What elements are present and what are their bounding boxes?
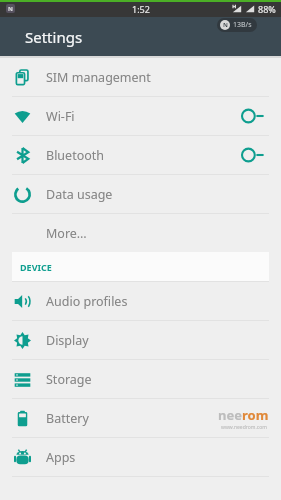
staticText: Display bbox=[46, 332, 89, 349]
staticText: Battery bbox=[46, 410, 89, 427]
staticText: SIM management bbox=[46, 69, 151, 86]
button[interactable]: Audio profiles bbox=[0, 282, 281, 320]
staticText: DEVICE bbox=[20, 261, 52, 273]
staticText: www.needrom.com bbox=[221, 424, 267, 431]
staticText: Bluetooth bbox=[46, 147, 105, 164]
button[interactable]: Battery bbox=[0, 399, 281, 437]
button[interactable]: Wi-Fi bbox=[0, 97, 281, 135]
staticText: 1:52 bbox=[132, 3, 150, 15]
button[interactable]: Storage bbox=[0, 360, 281, 398]
staticText: Wi-Fi bbox=[46, 108, 75, 125]
button[interactable]: Data usage bbox=[0, 175, 281, 213]
staticText: 88% bbox=[258, 3, 276, 15]
staticText: More… bbox=[46, 225, 87, 242]
staticText: Apps bbox=[46, 449, 76, 466]
staticText: Storage bbox=[46, 371, 92, 388]
staticText: N bbox=[223, 21, 228, 29]
button[interactable]: Apps bbox=[0, 438, 281, 476]
staticText: rom bbox=[242, 406, 269, 424]
staticText: 13B/s bbox=[233, 20, 252, 30]
button[interactable]: Bluetooth bbox=[0, 136, 281, 174]
button[interactable]: More… bbox=[0, 214, 281, 252]
staticText: N bbox=[8, 5, 13, 13]
staticText: Data usage bbox=[46, 186, 113, 203]
button[interactable]: SIM management bbox=[0, 58, 281, 96]
staticText: Audio profiles bbox=[46, 293, 128, 310]
staticText: Settings bbox=[25, 27, 83, 47]
staticText: nee bbox=[218, 406, 242, 424]
button[interactable]: Display bbox=[0, 321, 281, 359]
